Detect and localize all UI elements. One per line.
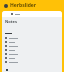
- button[interactable]: [2, 52, 62, 56]
- staticText: Notes: [5, 19, 17, 24]
- button[interactable]: [2, 48, 62, 52]
- button[interactable]: [2, 56, 62, 60]
- button[interactable]: Menu: [4, 4, 8, 8]
- button[interactable]: [2, 36, 62, 40]
- button[interactable]: [2, 11, 62, 17]
- staticText: Herbslider: [10, 2, 37, 9]
- button[interactable]: [2, 60, 62, 64]
- button[interactable]: [2, 40, 62, 44]
- button[interactable]: [2, 44, 62, 48]
